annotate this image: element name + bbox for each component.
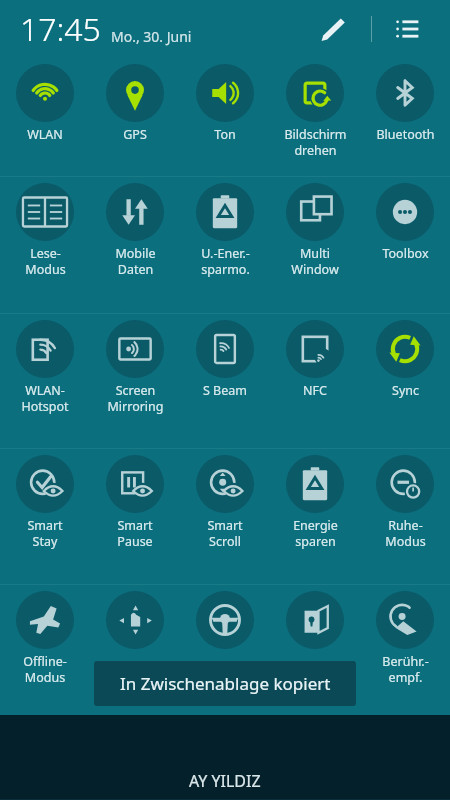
staticText: AY YILDIZ <box>189 770 261 792</box>
staticText: Bildschirm drehen <box>284 126 347 158</box>
button[interactable]: Berühr.- empf. <box>360 585 450 710</box>
staticText: Bluetooth <box>376 126 435 143</box>
staticText: GPS <box>123 126 147 143</box>
staticText: Mobile Daten <box>115 245 156 277</box>
staticText: In Zwischenablage kopiert <box>120 672 331 695</box>
button[interactable]: Lese- Modus <box>0 177 90 313</box>
staticText: S Beam <box>203 382 247 399</box>
staticText: Screen Mirroring <box>107 382 164 414</box>
button[interactable]: Multi Window <box>270 177 360 313</box>
staticText: 17:45 <box>20 7 101 51</box>
staticText: Offline- Modus <box>23 653 67 685</box>
button[interactable]: Sync <box>360 314 450 448</box>
staticText: Smart Scroll <box>207 517 243 549</box>
button[interactable]: Ton <box>180 58 270 176</box>
staticText: Smart Stay <box>27 517 63 549</box>
staticText: Sync <box>392 382 419 399</box>
button[interactable]: Ruhe- Modus <box>360 449 450 584</box>
staticText: Mo., 30. Juni <box>111 27 192 46</box>
button[interactable]: Smart Stay <box>0 449 90 584</box>
button[interactable]: Liste <box>388 9 428 49</box>
button[interactable]: Screen Mirroring <box>90 314 180 448</box>
button[interactable]: U.-Ener.- sparmo. <box>180 177 270 313</box>
button[interactable]: Toggle <box>270 585 360 710</box>
staticText: Lese- Modus <box>25 245 66 277</box>
staticText: Ruhe- Modus <box>385 517 426 549</box>
staticText: NFC <box>303 382 327 399</box>
button[interactable]: NFC <box>270 314 360 448</box>
staticText: Berühr.- empf. <box>382 653 429 685</box>
button[interactable]: Smart Scroll <box>180 449 270 584</box>
button[interactable]: Mobile Daten <box>90 177 180 313</box>
button[interactable]: GPS <box>90 58 180 176</box>
button[interactable]: Offline- Modus <box>0 585 90 710</box>
staticText: Multi Window <box>291 245 339 277</box>
button[interactable]: Toggle <box>180 585 270 710</box>
staticText: WLAN- Hotspot <box>21 382 69 414</box>
staticText: U.-Ener.- sparmo. <box>201 245 250 277</box>
staticText: Toolbox <box>382 245 429 262</box>
button[interactable]: Bildschirm drehen <box>270 58 360 176</box>
button[interactable]: Bluetooth <box>360 58 450 176</box>
staticText: Energie sparen <box>293 517 338 549</box>
staticText: Ton <box>214 126 236 143</box>
button[interactable]: WLAN <box>0 58 90 176</box>
button[interactable]: Toolbox <box>360 177 450 313</box>
button[interactable]: Energie sparen <box>270 449 360 584</box>
button[interactable]: S Beam <box>180 314 270 448</box>
staticText: WLAN <box>27 126 63 143</box>
staticText: Smart Pause <box>117 517 153 549</box>
button[interactable]: Toggle <box>90 585 180 710</box>
button[interactable]: Smart Pause <box>90 449 180 584</box>
button[interactable]: Bearbeiten <box>312 9 352 49</box>
button[interactable]: WLAN- Hotspot <box>0 314 90 448</box>
